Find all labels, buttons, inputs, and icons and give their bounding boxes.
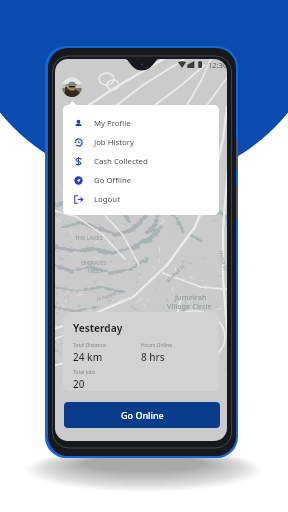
staticText: Jumeirah — [175, 292, 207, 302]
staticText: 20 — [73, 377, 85, 391]
staticText: Cash Collected — [94, 156, 148, 167]
staticText: Hours Online — [141, 342, 173, 349]
staticText: My Profile — [94, 118, 131, 129]
button[interactable]: Profile menu — [62, 77, 82, 97]
button[interactable]: Go Online — [64, 402, 220, 428]
staticText: 24 km — [73, 350, 103, 364]
button[interactable]: My Profile — [63, 114, 219, 133]
staticText: Al Asayel St — [96, 288, 123, 303]
staticText: HILLS — [88, 267, 103, 274]
staticText: Go Online — [121, 409, 164, 421]
staticText: Total Distance — [73, 342, 106, 349]
staticText: Yesterday — [73, 321, 123, 335]
button[interactable]: Logout — [63, 190, 219, 209]
staticText: Hessa St — [217, 250, 227, 271]
staticText: Al Khail St — [165, 262, 187, 284]
staticText: THE LAKES — [75, 234, 103, 241]
staticText: Logout — [94, 194, 120, 205]
button[interactable]: Cash Collected — [63, 152, 219, 171]
staticText: 12:30 — [208, 60, 227, 70]
staticText: 8 hrs — [141, 350, 165, 364]
button[interactable]: Job History — [63, 133, 219, 152]
staticText: Go Offline — [94, 175, 132, 186]
staticText: EMIRATES — [81, 259, 107, 266]
staticText: Job History — [94, 137, 134, 148]
button[interactable]: Go Offline — [63, 171, 219, 190]
staticText: Total Jobs — [73, 369, 96, 376]
staticText: Village Circle — [167, 301, 212, 311]
